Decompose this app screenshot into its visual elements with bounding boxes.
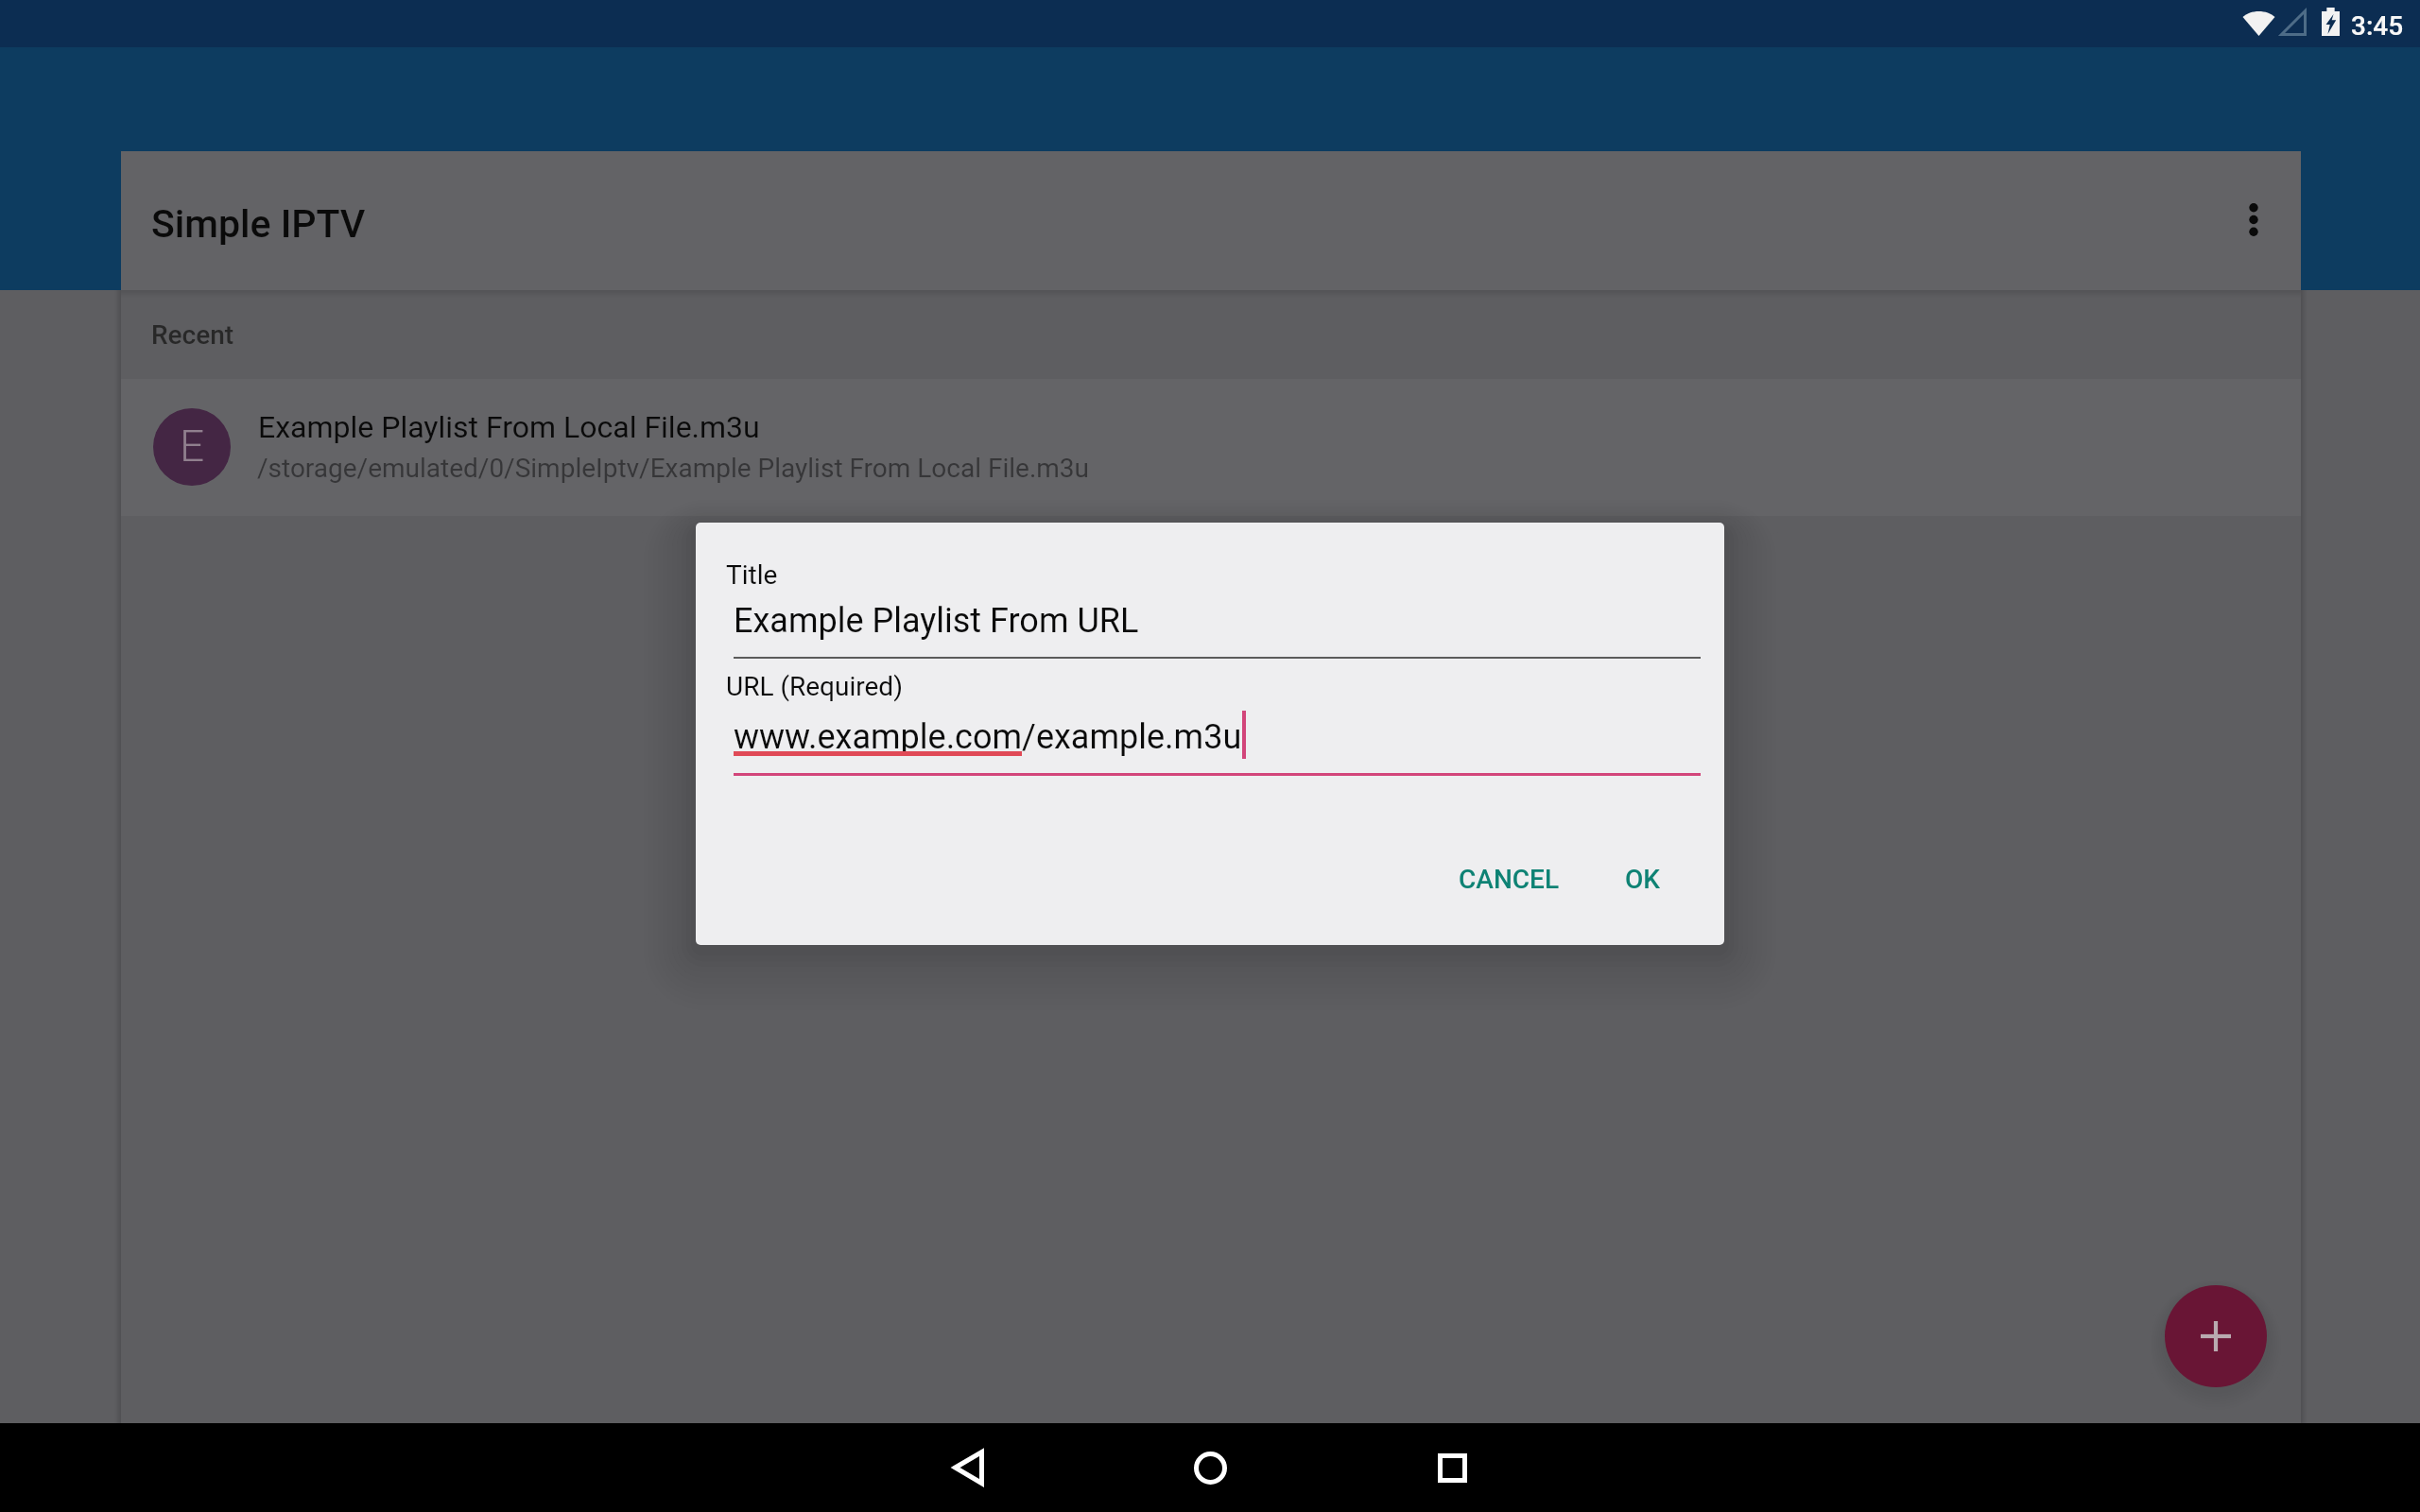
button[interactable]: Back (911, 1423, 1025, 1512)
staticText: OK (1625, 864, 1660, 895)
staticText: Title (726, 559, 778, 591)
button[interactable]: Recent apps (1395, 1423, 1509, 1512)
staticText: Example Playlist From URL (734, 601, 1139, 641)
staticText: 3:45 (2351, 10, 2404, 42)
button[interactable]: OK (1602, 841, 1683, 918)
staticText: CANCEL (1459, 864, 1560, 895)
staticText: www.example.com/example.m3u (734, 717, 1242, 757)
staticText: Example Playlist From Local File.m3u (258, 409, 760, 445)
staticText: E (180, 421, 205, 472)
staticText: Simple IPTV (151, 201, 366, 247)
staticText: Recent (151, 319, 234, 351)
button[interactable]: CANCEL (1436, 841, 1582, 918)
button[interactable]: Add playlist (2165, 1285, 2267, 1387)
button[interactable]: E (121, 379, 2301, 516)
button[interactable]: More options (2208, 174, 2299, 265)
button[interactable]: Home (1153, 1423, 1267, 1512)
staticText: URL (Required) (726, 671, 903, 702)
staticText: /storage/emulated/0/SimpleIptv/Example P… (257, 453, 1090, 484)
